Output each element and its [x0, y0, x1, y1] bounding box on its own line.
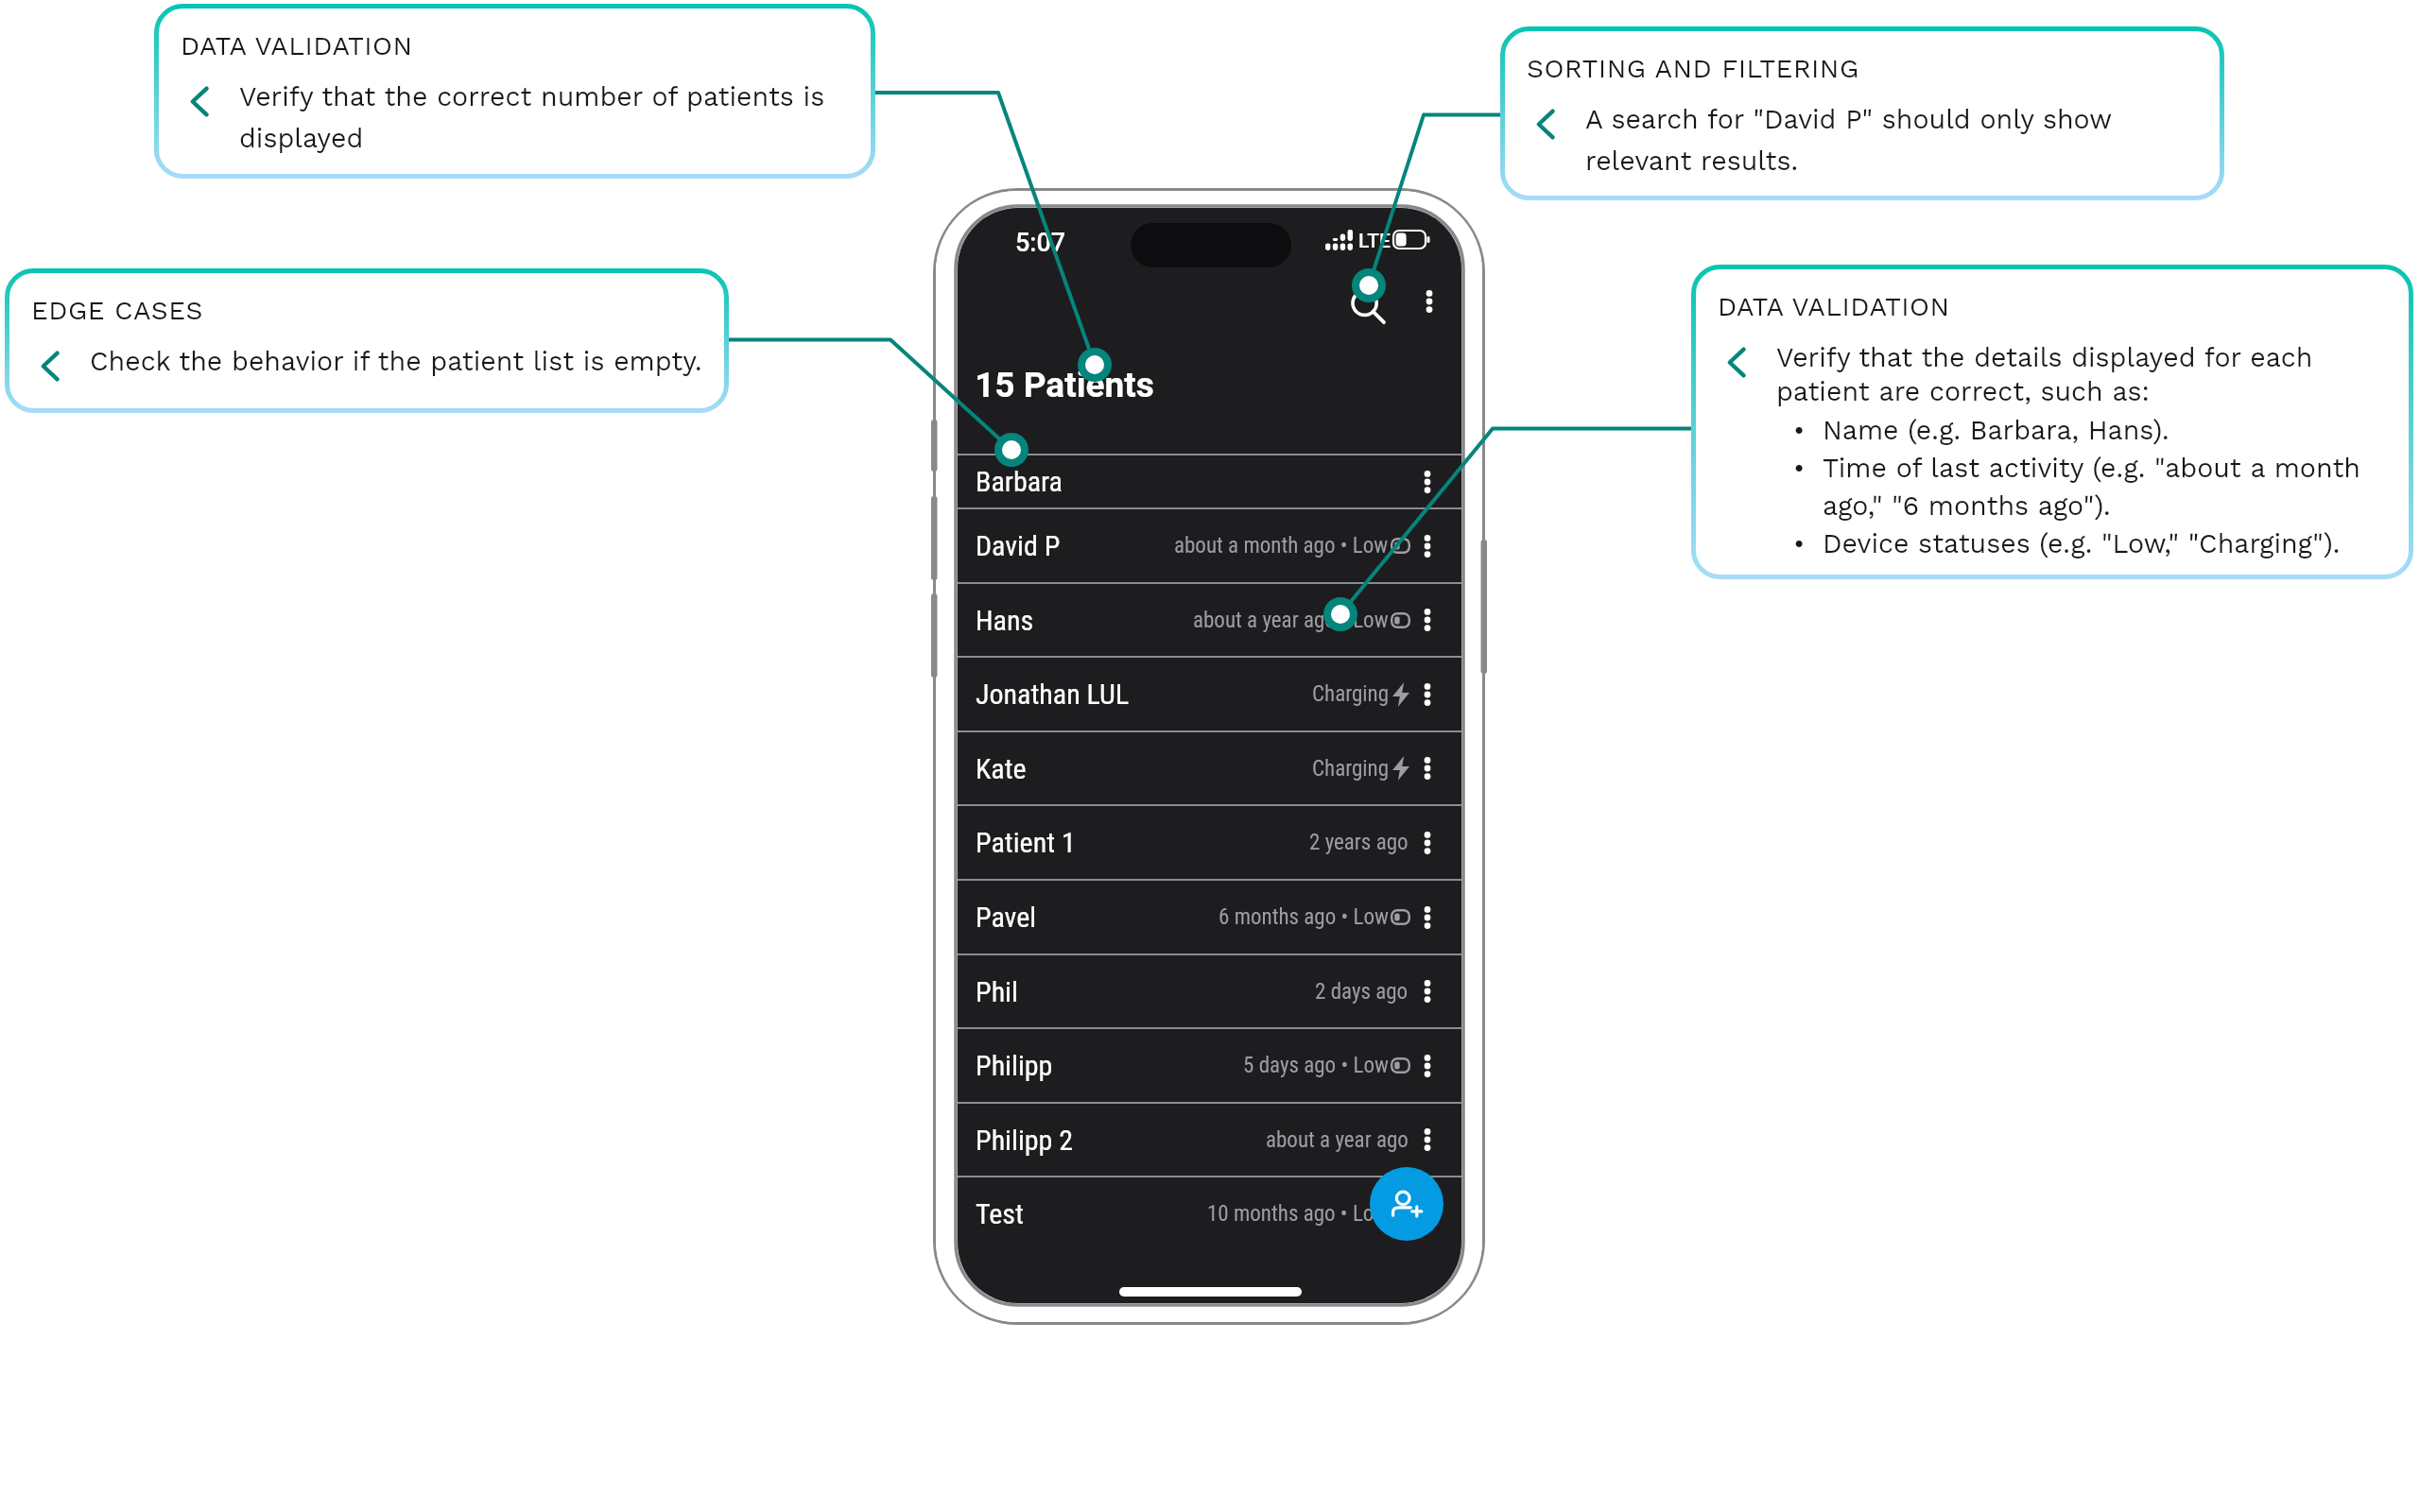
button[interactable]: More options [1415, 979, 1440, 1004]
button[interactable]: Phil [958, 955, 1461, 1027]
button[interactable]: Kate [958, 732, 1461, 804]
button[interactable]: More options [1410, 283, 1448, 320]
staticText: about a year ago • Low [1193, 608, 1389, 633]
staticText: Verify that the correct number of patien… [239, 80, 860, 154]
staticText: DATA VALIDATION [181, 30, 413, 61]
button[interactable]: More options [1415, 608, 1440, 632]
button[interactable]: Test [958, 1177, 1461, 1250]
staticText: • [1793, 414, 1806, 445]
button[interactable]: More options [1415, 534, 1440, 558]
staticText: Hans [976, 604, 1034, 637]
staticText: • [1793, 527, 1806, 558]
staticText: EDGE CASES [31, 295, 203, 326]
button[interactable]: More options [1415, 1127, 1440, 1152]
button[interactable]: More options [1415, 1054, 1440, 1078]
staticText: about a year ago [1266, 1127, 1409, 1153]
staticText: Patient 1 [976, 826, 1076, 859]
staticText: Philipp 2 [976, 1124, 1074, 1157]
button[interactable]: Philipp 2 [958, 1104, 1461, 1176]
staticText: 5 days ago • Low [1243, 1053, 1389, 1078]
button[interactable]: David P [958, 509, 1461, 582]
staticText: 5:07 [1015, 228, 1066, 258]
staticText: Barbara [976, 465, 1063, 498]
staticText: Time of last activity (e.g. "about a mon… [1823, 452, 2398, 522]
button[interactable]: More options [1415, 756, 1440, 781]
staticText: about a month ago • Low [1174, 533, 1389, 558]
staticText: David P [976, 529, 1061, 562]
staticText: Kate [976, 752, 1027, 785]
staticText: 10 months ago • Low [1207, 1201, 1389, 1227]
staticText: 15 Patients [975, 365, 1154, 405]
staticText: DATA VALIDATION [1718, 291, 1950, 322]
button[interactable]: Barbara [958, 455, 1461, 507]
button[interactable]: Hans [958, 584, 1461, 656]
staticText: 2 days ago [1315, 979, 1409, 1005]
button[interactable]: Add patient [1370, 1167, 1443, 1241]
staticText: Device statuses (e.g. "Low," "Charging")… [1823, 527, 2341, 558]
button[interactable]: More options [1415, 1202, 1440, 1227]
staticText: Pavel [976, 901, 1037, 934]
staticText: A search for "David P" should only show … [1585, 103, 2209, 177]
staticText: Charging [1312, 756, 1390, 782]
staticText: LTE [1358, 230, 1391, 253]
staticText: Jonathan LUL [976, 678, 1130, 711]
staticText: Charging [1312, 681, 1390, 707]
staticText: Verify that the details displayed for ea… [1776, 341, 2398, 406]
button[interactable]: More options [1415, 470, 1440, 494]
staticText: • [1793, 452, 1806, 483]
button[interactable]: More options [1415, 905, 1440, 930]
button[interactable]: Jonathan LUL [958, 658, 1461, 730]
button[interactable]: More options [1415, 831, 1440, 855]
button[interactable]: Patient 1 [958, 806, 1461, 879]
staticText: 2 years ago [1309, 830, 1409, 855]
staticText: Name (e.g. Barbara, Hans). [1823, 414, 2169, 445]
staticText: Phil [976, 975, 1018, 1008]
button[interactable]: More options [1415, 682, 1440, 707]
staticText: Philipp [976, 1049, 1053, 1082]
staticText: SORTING AND FILTERING [1527, 53, 1859, 84]
button[interactable]: Search [1342, 282, 1391, 331]
staticText: Check the behavior if the patient list i… [90, 345, 702, 376]
button[interactable]: Pavel [958, 881, 1461, 954]
button[interactable]: Philipp [958, 1029, 1461, 1102]
staticText: Test [976, 1197, 1024, 1230]
staticText: 6 months ago • Low [1219, 904, 1389, 930]
